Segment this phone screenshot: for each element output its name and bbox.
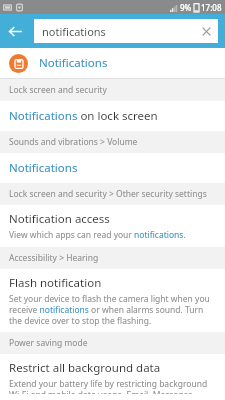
staticText: Power saving mode bbox=[9, 337, 88, 349]
staticText: 17:08 bbox=[201, 2, 222, 13]
staticText: Notifications on lock screen bbox=[9, 108, 158, 124]
staticText: Flash notification bbox=[9, 275, 102, 291]
staticText: notifications bbox=[42, 24, 106, 39]
staticText: Notification access bbox=[9, 211, 110, 227]
button[interactable]: Notification access bbox=[0, 205, 225, 247]
staticText: Restrict all background data bbox=[9, 360, 161, 376]
staticText: Notifications bbox=[39, 55, 108, 71]
button[interactable]: Back bbox=[0, 16, 30, 46]
button[interactable]: Restrict all background data bbox=[0, 354, 225, 400]
button[interactable]: Notifications bbox=[0, 153, 225, 183]
staticText: Notifications bbox=[9, 160, 78, 176]
button[interactable]: Notifications on lock screen bbox=[0, 101, 225, 131]
staticText: View which apps can read your notificati… bbox=[9, 229, 186, 241]
staticText: Sounds and vibrations > Volume bbox=[9, 136, 138, 148]
button[interactable]: Clear search bbox=[194, 19, 218, 43]
button[interactable]: Flash notification bbox=[0, 269, 225, 332]
staticText: Set your device to flash the camera ligh… bbox=[9, 293, 216, 326]
staticText: Accessibility > Hearing bbox=[9, 252, 99, 264]
staticText: Lock screen and security bbox=[9, 84, 107, 96]
staticText: Lock screen and security > Other securit… bbox=[9, 188, 207, 200]
button[interactable]: notifications bbox=[34, 19, 218, 43]
button[interactable]: Notifications bbox=[0, 48, 225, 78]
staticText: 9% bbox=[180, 2, 192, 13]
staticText: Extend your battery life by restricting … bbox=[9, 378, 216, 394]
